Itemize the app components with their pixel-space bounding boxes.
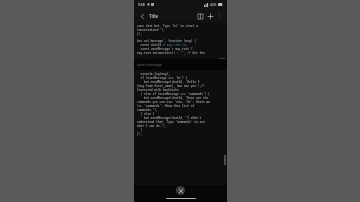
staticText: } [137, 128, 143, 132]
staticText: }); [137, 132, 143, 136]
staticText: bot.sendMessage(chatId, "I didn't [137, 116, 202, 120]
staticText: understand that. Type 'commands' to see [137, 120, 205, 124]
staticText: console.log(msg); [137, 72, 170, 76]
staticText: \n- 'commands': Show this list of [137, 104, 195, 108]
staticText: if (userMessage === 'hi') { [137, 76, 188, 80]
staticText: what I can do."); [137, 124, 167, 128]
button[interactable]: More options [215, 11, 224, 20]
staticText: bot.sendMessage(chatId, `Hello $ [137, 80, 200, 84]
button[interactable]: Back [137, 11, 147, 21]
staticText: const userMessage = msg.text ? [137, 47, 193, 51]
staticText: Title [149, 13, 159, 19]
staticText: }); [137, 32, 143, 36]
staticText: bot.sendMessage(chatId, "Here are the [137, 96, 209, 100]
staticText: const chatId = [137, 43, 167, 47]
button[interactable]: Close [176, 186, 185, 195]
staticText: msg.text.toLowerCase() : ''; // Get the [137, 51, 205, 55]
staticText: user's message [137, 62, 162, 67]
staticText: your chat bot. Type 'hi' to start a [137, 24, 198, 28]
staticText: 44% [210, 3, 217, 7]
staticText: Corrected with backticks [137, 88, 179, 92]
staticText: bot.on('message', function (msg) { [137, 39, 196, 43]
staticText: conversation!"); [137, 28, 165, 32]
staticText: msg.chat.id; [167, 43, 188, 47]
staticText: } else if (userMessage === 'commands') { [137, 92, 210, 96]
staticText: } else { [137, 112, 155, 116]
staticText: {msg.from.first_name}, how are you`);// [137, 84, 205, 88]
staticText: commands you can use: \n\n- 'hi': Greet … [137, 100, 212, 104]
button[interactable]: Split view [195, 11, 205, 21]
staticText: 9:58 [138, 2, 145, 7]
staticText: commands."); [137, 108, 158, 112]
button[interactable]: Add [205, 11, 215, 21]
